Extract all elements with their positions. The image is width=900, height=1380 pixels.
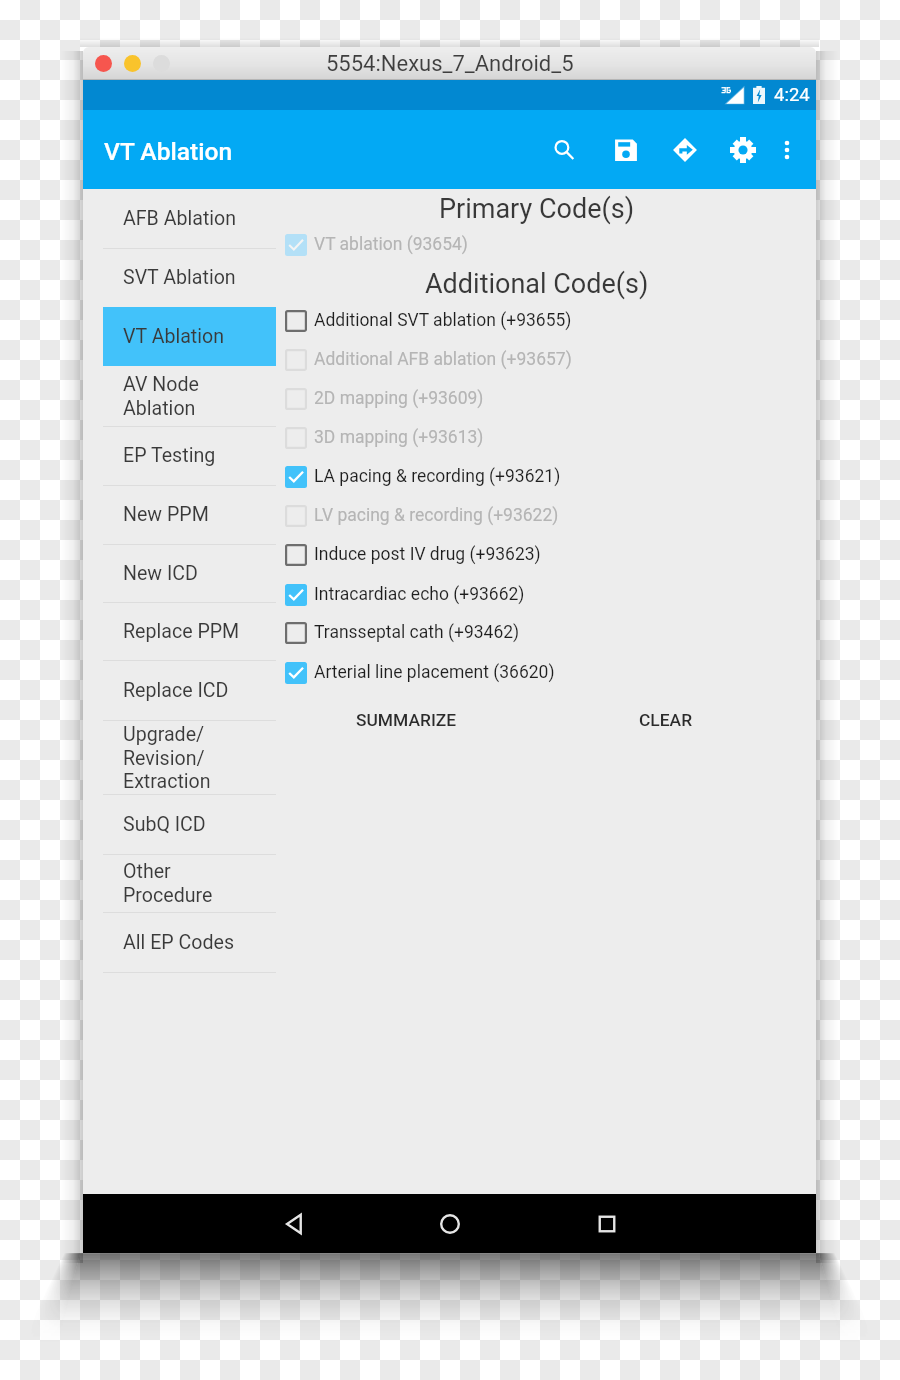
button[interactable]: LA pacing & recording (+93621) [276,457,816,496]
button[interactable]: Save [599,110,653,189]
button[interactable]: VT ablation (93654) [276,225,816,264]
staticText: Intracardiac echo (+93662) [314,584,525,605]
button[interactable]: EP Testing [103,426,276,485]
button[interactable]: 3D mapping (+93613) [276,418,816,457]
staticText: New PPM [123,503,209,526]
staticText: 4:24 [774,84,810,106]
staticText: Arterial line placement (36620) [314,662,555,683]
staticText: New ICD [123,562,198,585]
staticText: Upgrade/ Revision/ Extraction [123,723,211,792]
staticText: Primary Code(s) [439,193,635,225]
button[interactable]: Induce post IV drug (+93623) [276,535,816,574]
staticText: Transseptal cath (+93462) [314,622,520,643]
staticText: LA pacing & recording (+93621) [314,466,561,487]
button[interactable]: Arterial line placement (36620) [276,653,816,692]
staticText: 5554:Nexus_7_Android_5 [326,51,574,77]
button[interactable]: Search [537,110,591,189]
staticText: CLEAR [639,710,693,730]
staticText: Other Procedure [123,860,213,906]
button[interactable]: Transseptal cath (+93462) [276,613,816,652]
button[interactable]: Back [265,1194,325,1253]
button[interactable]: SubQ ICD [103,794,276,854]
staticText: AV Node Ablation [123,373,199,419]
button[interactable]: Home [420,1194,480,1253]
button[interactable]: SVT Ablation [103,248,276,307]
button[interactable]: AV Node Ablation [103,366,276,426]
button[interactable]: Directions [658,110,712,189]
staticText: EP Testing [123,444,216,467]
button[interactable]: All EP Codes [103,912,276,972]
button[interactable]: VT Ablation [103,307,276,366]
staticText: 2D mapping (+93609) [314,388,484,409]
staticText: 3D mapping (+93613) [314,427,484,448]
button[interactable]: Upgrade/ Revision/ Extraction [103,720,276,794]
button[interactable]: New PPM [103,485,276,544]
button[interactable]: AFB Ablation [103,189,276,248]
staticText: SubQ ICD [123,813,206,836]
button[interactable]: Additional AFB ablation (+93657) [276,340,816,379]
button[interactable]: New ICD [103,544,276,602]
staticText: Induce post IV drug (+93623) [314,544,541,565]
button[interactable]: Intracardiac echo (+93662) [276,575,816,614]
button[interactable]: Replace ICD [103,660,276,720]
button[interactable]: LV pacing & recording (+93622) [276,496,816,535]
staticText: Replace ICD [123,679,229,702]
staticText: AFB Ablation [123,207,237,230]
staticText: All EP Codes [123,931,235,954]
button[interactable]: SUMMARIZE [350,704,463,736]
button[interactable]: CLEAR [633,704,699,736]
staticText: SUMMARIZE [356,710,457,730]
staticText: Additional SVT ablation (+93655) [314,310,572,331]
button[interactable]: Additional SVT ablation (+93655) [276,301,816,340]
staticText: SVT Ablation [123,266,236,289]
staticText: Additional Code(s) [425,268,649,300]
staticText: VT Ablation [123,325,225,348]
button[interactable]: Other Procedure [103,854,276,912]
staticText: VT Ablation [104,137,233,166]
staticText: VT ablation (93654) [314,234,468,255]
staticText: Replace PPM [123,620,240,643]
button[interactable]: Replace PPM [103,602,276,660]
button[interactable]: Recent apps [577,1194,637,1253]
button[interactable]: 2D mapping (+93609) [276,379,816,418]
staticText: LV pacing & recording (+93622) [314,505,559,526]
button[interactable]: More options [760,110,814,189]
staticText: Additional AFB ablation (+93657) [314,349,572,370]
button[interactable]: Settings [716,110,770,189]
